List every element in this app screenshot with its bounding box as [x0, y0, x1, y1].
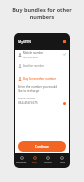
staticText: MyMTN — [18, 39, 32, 44]
staticText: Shop — [32, 161, 37, 164]
staticText: More — [60, 161, 65, 164]
staticText: 064 458 5675 — [23, 55, 38, 58]
staticText: Dashboard — [16, 161, 27, 164]
staticText: Mobile number — [23, 51, 44, 55]
staticText: Account — [44, 161, 52, 164]
button[interactable]: Buy for another number — [18, 76, 66, 81]
staticText: Continue — [35, 145, 49, 149]
button[interactable]: Another number — [18, 63, 66, 68]
button[interactable]: Mobile number — [18, 51, 66, 58]
button[interactable]: Continue — [18, 141, 66, 152]
staticText: Mobile number — [18, 96, 36, 99]
button[interactable]: Contacts — [63, 102, 66, 105]
button[interactable]: Account — [41, 153, 55, 168]
staticText: Another number — [23, 64, 45, 68]
button[interactable]: Shop — [28, 153, 41, 168]
staticText: Enter the number you would like to recha… — [18, 85, 57, 93]
staticText: Buy bundles for other numbers — [0, 6, 84, 20]
button[interactable]: Menu — [63, 40, 66, 43]
staticText: 064 458 5675 — [18, 101, 63, 105]
staticText: Buy for another number — [23, 77, 57, 81]
button[interactable]: Dashboard — [15, 153, 28, 168]
button[interactable]: More — [55, 153, 69, 168]
